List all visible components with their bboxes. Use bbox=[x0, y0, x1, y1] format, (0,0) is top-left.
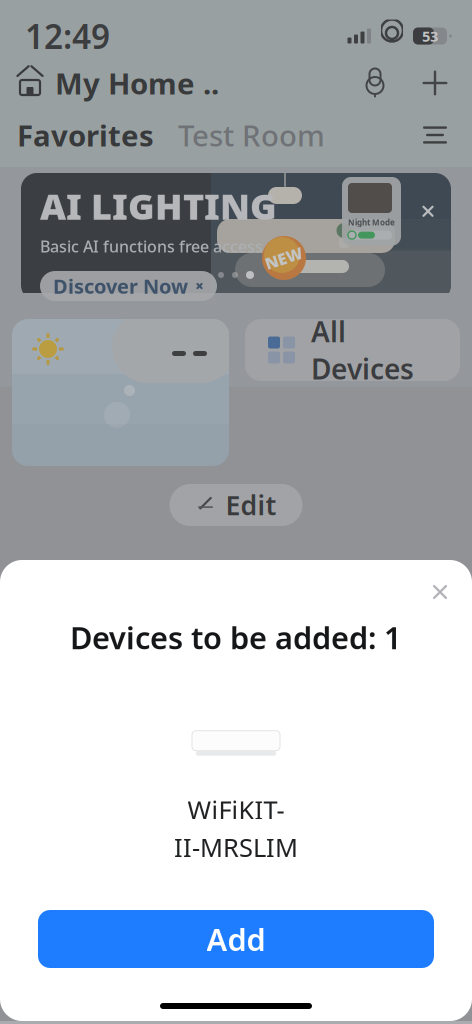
staticText: WiFiKIT- bbox=[187, 793, 284, 826]
staticText: My Home .. bbox=[55, 63, 219, 102]
staticText: Devices to be added: 1 bbox=[70, 617, 402, 658]
button[interactable]: My Home .. bbox=[17, 63, 219, 102]
button[interactable]: Add bbox=[38, 910, 434, 968]
button[interactable] bbox=[12, 319, 229, 466]
button[interactable]: Test Room bbox=[178, 115, 325, 154]
button[interactable]: All Devices bbox=[245, 319, 460, 381]
button[interactable]: Close bbox=[418, 570, 462, 614]
button[interactable]: Add accessory bbox=[415, 63, 455, 103]
staticText: Basic AI functions free access bbox=[40, 236, 263, 257]
staticText: Discover Now bbox=[53, 273, 188, 299]
staticText: Add bbox=[206, 919, 265, 959]
button[interactable]: AI LIGHTING bbox=[21, 173, 451, 301]
staticText: Test Room bbox=[178, 115, 325, 154]
staticText: 12:49 bbox=[25, 14, 110, 58]
button[interactable]: Room list bbox=[415, 117, 455, 153]
staticText: Favorites bbox=[17, 115, 154, 154]
staticText: Edit bbox=[225, 487, 276, 523]
staticText: II-MRSLIM bbox=[174, 830, 298, 864]
staticText: AI LIGHTING bbox=[40, 182, 277, 230]
button[interactable]: Close banner bbox=[415, 198, 441, 224]
button[interactable]: Voice control bbox=[355, 63, 395, 103]
staticText: 53 bbox=[422, 26, 438, 46]
staticText: Night Mode bbox=[348, 217, 395, 228]
staticText: All Devices bbox=[311, 313, 414, 387]
staticText: NEW bbox=[264, 247, 303, 268]
button[interactable]: Edit bbox=[169, 484, 302, 526]
button[interactable]: Favorites bbox=[17, 115, 154, 154]
